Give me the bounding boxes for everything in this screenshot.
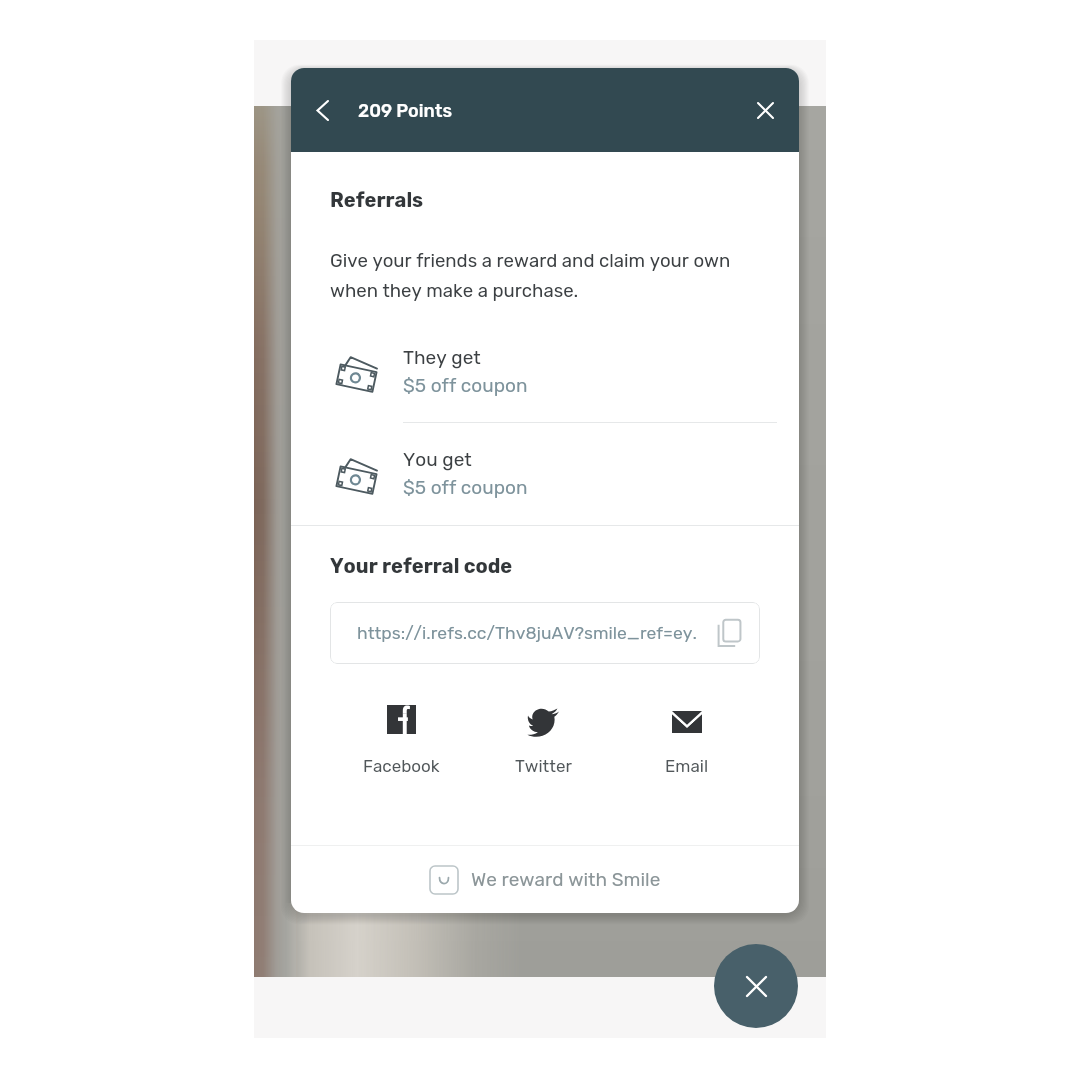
- staticText: Email: [665, 756, 709, 776]
- staticText: They get: [403, 346, 481, 369]
- button[interactable]: You get: [330, 423, 760, 524]
- button[interactable]: Email: [615, 701, 758, 780]
- staticText: Facebook: [363, 756, 440, 776]
- button[interactable]: Close dialog: [746, 91, 784, 129]
- button[interactable]: https://i.refs.cc/Thv8juAV?smile_ref=ey.: [330, 602, 760, 664]
- button[interactable]: We reward with Smile: [291, 846, 799, 913]
- staticText: Twitter: [515, 756, 572, 776]
- staticText: Your referral code: [330, 554, 513, 578]
- staticText: Give your friends a reward and claim you…: [330, 250, 760, 302]
- button[interactable]: Facebook: [330, 701, 472, 780]
- staticText: $5 off coupon: [403, 476, 528, 499]
- staticText: You get: [403, 448, 472, 471]
- button[interactable]: Close: [714, 944, 798, 1028]
- staticText: https://i.refs.cc/Thv8juAV?smile_ref=ey.: [357, 623, 697, 644]
- staticText: 209 Points: [358, 100, 452, 121]
- staticText: $5 off coupon: [403, 374, 528, 397]
- staticText: We reward with Smile: [471, 868, 661, 891]
- button[interactable]: Back: [304, 92, 340, 128]
- button[interactable]: Twitter: [472, 701, 615, 780]
- button[interactable]: They get: [330, 321, 760, 422]
- staticText: Referrals: [330, 188, 424, 212]
